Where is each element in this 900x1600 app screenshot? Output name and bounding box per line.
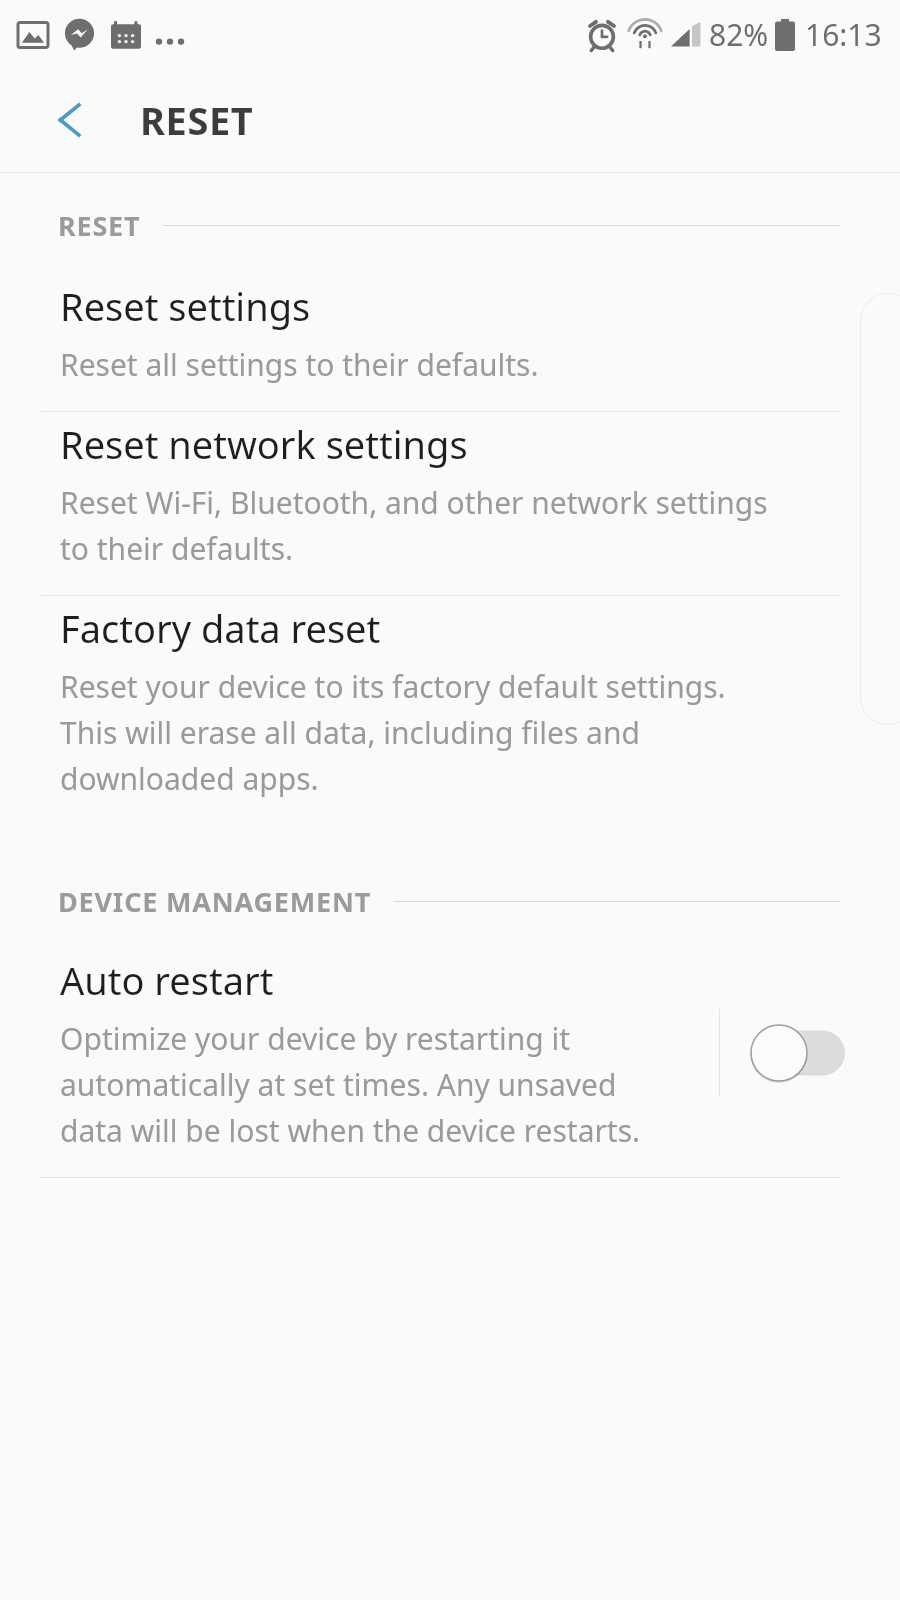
staticText: Reset settings bbox=[60, 280, 311, 332]
staticText: DEVICE MANAGEMENT bbox=[58, 883, 372, 920]
staticText: RESET bbox=[58, 207, 141, 244]
staticText: Optimize your device by restarting it bbox=[60, 1018, 571, 1059]
staticText: RESET bbox=[140, 94, 254, 146]
staticText: Reset all settings to their defaults. bbox=[60, 344, 539, 385]
staticText: automatically at set times. Any unsaved bbox=[60, 1064, 617, 1105]
button[interactable]: Auto restart bbox=[0, 948, 900, 1177]
staticText: data will be lost when the device restar… bbox=[60, 1110, 641, 1151]
staticText: This will erase all data, including file… bbox=[60, 712, 640, 753]
button[interactable]: Reset network settings bbox=[0, 412, 900, 595]
staticText: Reset Wi-Fi, Bluetooth, and other networ… bbox=[60, 482, 768, 523]
staticText: Auto restart bbox=[60, 954, 274, 1006]
button[interactable]: Back bbox=[28, 78, 112, 162]
staticText: to their defaults. bbox=[60, 528, 294, 569]
staticText: downloaded apps. bbox=[60, 758, 319, 799]
button[interactable]: Reset settings bbox=[0, 274, 900, 411]
button[interactable]: Auto restart toggle bbox=[720, 998, 870, 1108]
staticText: 16:13 bbox=[805, 14, 882, 55]
staticText: Reset your device to its factory default… bbox=[60, 666, 726, 707]
button[interactable]: Factory data reset bbox=[0, 596, 900, 825]
staticText: Factory data reset bbox=[60, 602, 381, 654]
staticText: 82% bbox=[709, 14, 769, 55]
staticText: Reset network settings bbox=[60, 418, 468, 470]
